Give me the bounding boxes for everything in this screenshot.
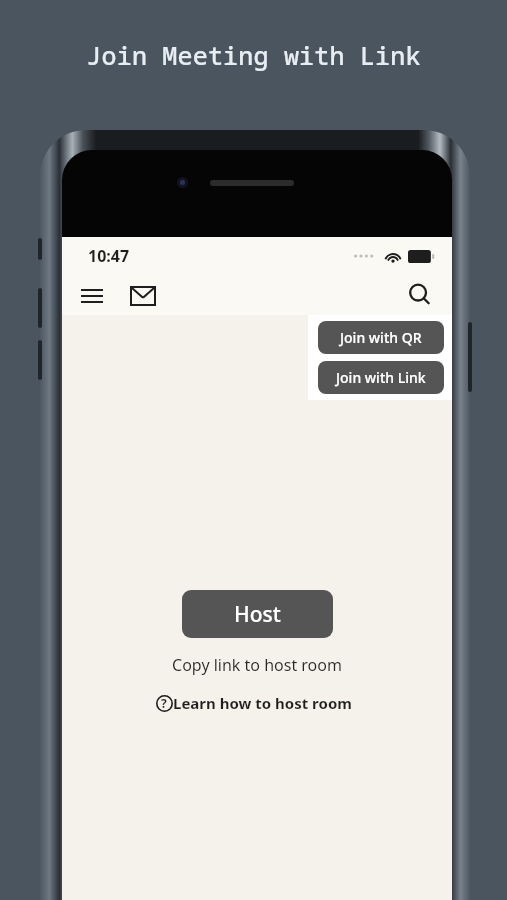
- button[interactable]: Host: [182, 590, 333, 638]
- staticText: Join with Link: [336, 368, 426, 387]
- button[interactable]: ?: [156, 693, 359, 713]
- staticText: ?: [161, 695, 167, 711]
- staticText: Learn how to host room: [173, 693, 352, 713]
- button[interactable]: Mail: [128, 281, 158, 311]
- staticText: Join with QR: [340, 328, 422, 347]
- button[interactable]: Join with Link: [318, 361, 444, 394]
- button[interactable]: Join with QR: [318, 321, 444, 354]
- staticText: Join Meeting with Link: [86, 38, 421, 72]
- button[interactable]: Menu: [78, 282, 106, 310]
- staticText: Copy link to host room: [172, 654, 342, 676]
- staticText: Host: [234, 600, 281, 629]
- button[interactable]: Search: [404, 279, 436, 311]
- staticText: 10:47: [88, 245, 130, 267]
